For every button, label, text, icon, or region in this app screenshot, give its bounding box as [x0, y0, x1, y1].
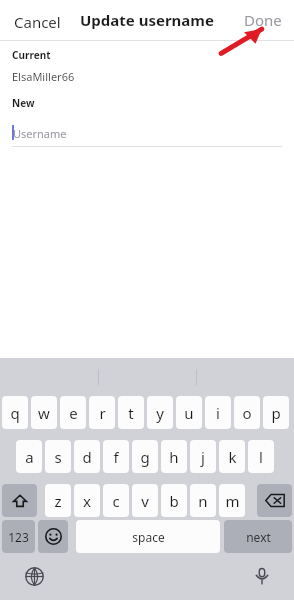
button[interactable]: t — [118, 396, 144, 429]
staticText: y — [156, 403, 164, 423]
button[interactable]: h — [161, 440, 187, 473]
button[interactable]: p — [263, 396, 289, 429]
button[interactable]: s — [45, 440, 71, 473]
button[interactable]: Username — [12, 124, 282, 148]
button[interactable]: l — [248, 440, 274, 473]
button[interactable]: n — [190, 484, 216, 517]
staticText: c — [112, 491, 120, 511]
staticText: u — [184, 403, 194, 423]
staticText: n — [198, 491, 208, 511]
staticText: z — [54, 491, 62, 511]
button[interactable]: f — [103, 440, 129, 473]
staticText: s — [54, 447, 62, 467]
staticText: x — [83, 491, 91, 511]
staticText: o — [242, 403, 252, 423]
button[interactable]: c — [103, 484, 129, 517]
button[interactable]: Emoji — [38, 520, 68, 553]
button[interactable]: x — [74, 484, 100, 517]
button[interactable]: Cancel — [14, 12, 61, 32]
button[interactable]: m — [219, 484, 245, 517]
staticText: b — [169, 491, 179, 511]
staticText: d — [82, 447, 92, 467]
button[interactable]: Backspace — [257, 484, 292, 517]
button[interactable]: Shift — [2, 484, 37, 517]
staticText: v — [141, 491, 149, 511]
staticText: Done — [244, 10, 282, 30]
button[interactable]: g — [132, 440, 158, 473]
button[interactable]: space — [76, 520, 220, 553]
staticText: a — [25, 447, 34, 467]
button[interactable]: u — [176, 396, 202, 429]
button[interactable]: o — [234, 396, 260, 429]
staticText: m — [225, 491, 240, 511]
staticText: ElsaMiller66 — [12, 69, 75, 84]
button[interactable]: next — [224, 520, 292, 553]
staticText: h — [169, 447, 179, 467]
staticText: k — [228, 447, 237, 467]
button[interactable]: a — [16, 440, 42, 473]
staticText: Username — [13, 126, 67, 141]
staticText: Current — [12, 48, 51, 62]
staticText: l — [259, 447, 263, 467]
staticText: r — [99, 403, 106, 423]
staticText: t — [128, 403, 134, 423]
button[interactable]: Done — [244, 10, 282, 30]
button[interactable]: k — [219, 440, 245, 473]
staticText: i — [216, 403, 220, 423]
staticText: e — [69, 403, 78, 423]
staticText: w — [38, 403, 50, 423]
staticText: New — [12, 96, 35, 110]
button[interactable]: Voice input — [248, 562, 276, 590]
button[interactable]: z — [45, 484, 71, 517]
staticText: f — [113, 447, 119, 467]
button[interactable]: d — [74, 440, 100, 473]
button[interactable]: j — [190, 440, 216, 473]
button[interactable]: e — [60, 396, 86, 429]
button[interactable]: 123 — [2, 520, 35, 553]
button[interactable]: w — [31, 396, 57, 429]
staticText: j — [201, 447, 205, 467]
staticText: Update username — [80, 10, 214, 30]
staticText: space — [132, 529, 165, 545]
staticText: g — [140, 447, 150, 467]
button[interactable]: i — [205, 396, 231, 429]
button[interactable]: Change keyboard — [20, 562, 48, 590]
button[interactable]: y — [147, 396, 173, 429]
button[interactable]: r — [89, 396, 115, 429]
staticText: next — [246, 529, 271, 545]
staticText: q — [10, 403, 20, 423]
button[interactable]: v — [132, 484, 158, 517]
staticText: Cancel — [14, 12, 61, 32]
button[interactable]: q — [2, 396, 28, 429]
staticText: p — [271, 403, 281, 423]
button[interactable]: b — [161, 484, 187, 517]
staticText: 123 — [8, 529, 29, 545]
